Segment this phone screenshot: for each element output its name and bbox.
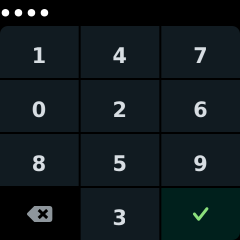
staticText: 5 <box>112 152 126 176</box>
staticText: 8 <box>32 152 46 176</box>
button[interactable]: 5 <box>81 134 159 186</box>
button[interactable]: 3 <box>81 188 159 240</box>
button[interactable]: 6 <box>161 80 240 132</box>
button[interactable]: 1 <box>0 26 79 78</box>
button[interactable]: 2 <box>81 80 159 132</box>
staticText: 2 <box>112 98 126 122</box>
staticText: 4 <box>112 44 126 68</box>
button[interactable]: 0 <box>0 80 79 132</box>
staticText: 6 <box>193 98 207 122</box>
staticText: 7 <box>193 44 207 68</box>
button[interactable]: 8 <box>0 134 79 186</box>
staticText: 1 <box>32 44 46 68</box>
button[interactable]: Confirm <box>161 188 240 240</box>
button[interactable]: 4 <box>81 26 159 78</box>
staticText: 0 <box>32 98 46 122</box>
staticText: 3 <box>112 206 126 230</box>
staticText: 9 <box>193 152 207 176</box>
button[interactable]: Delete <box>0 188 79 240</box>
button[interactable]: 7 <box>161 26 240 78</box>
button[interactable]: 9 <box>161 134 240 186</box>
